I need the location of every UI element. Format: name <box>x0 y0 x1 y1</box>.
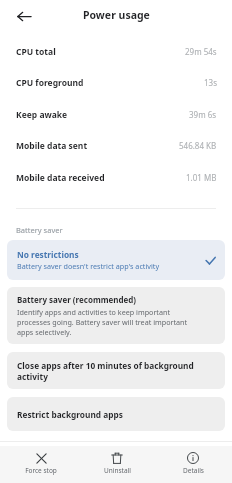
staticText: 13s <box>204 77 217 88</box>
staticText: Keep awake <box>16 109 68 121</box>
staticText: 1.01 MB <box>186 172 217 183</box>
staticText: Details <box>183 466 204 475</box>
button[interactable]: Force stop <box>9 446 75 475</box>
button[interactable]: Details <box>158 446 224 475</box>
staticText: 29m 54s <box>185 46 217 57</box>
button[interactable]: Keep awake <box>0 99 232 130</box>
staticText: Restrict background apps <box>17 409 123 420</box>
button[interactable]: Mobile data sent <box>0 130 232 161</box>
button[interactable]: CPU total <box>0 36 232 67</box>
staticText: CPU foreground <box>16 77 84 89</box>
button[interactable]: Restrict background apps <box>7 397 225 431</box>
staticText: 546.84 KB <box>179 140 217 151</box>
button[interactable]: Battery saver (recommended) <box>7 287 225 344</box>
staticText: Battery saver <box>16 225 63 235</box>
staticText: Identify apps and activities to keep imp… <box>17 307 197 337</box>
staticText: Mobile data received <box>16 172 105 184</box>
staticText: Power usage <box>83 8 150 22</box>
button[interactable]: CPU foreground <box>0 67 232 98</box>
staticText: No restrictions <box>17 249 79 260</box>
staticText: CPU total <box>16 46 56 58</box>
button[interactable]: Mobile data received <box>0 162 232 193</box>
button[interactable]: Uninstall <box>83 446 149 475</box>
other: Selected <box>204 254 217 267</box>
button[interactable]: Close apps after 10 minutes of backgroun… <box>7 352 225 389</box>
staticText: 39m 6s <box>189 109 217 120</box>
staticText: Force stop <box>25 466 57 475</box>
staticText: Uninstall <box>104 466 131 475</box>
button[interactable]: No restrictions <box>7 240 225 280</box>
staticText: Battery saver doesn't restrict app's act… <box>17 261 160 271</box>
staticText: Battery saver (recommended) <box>17 294 137 305</box>
staticText: Mobile data sent <box>16 140 88 152</box>
staticText: Close apps after 10 minutes of backgroun… <box>17 360 203 382</box>
button[interactable]: Back <box>10 2 38 30</box>
